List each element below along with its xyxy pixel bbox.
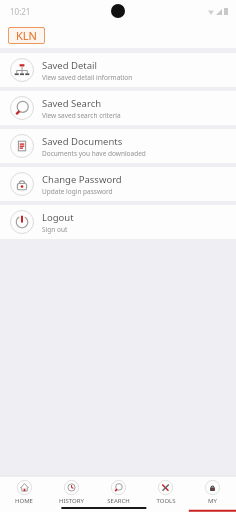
- staticText: Logout: [42, 211, 74, 224]
- staticText: Saved Search: [42, 97, 102, 110]
- staticText: HISTORY: [59, 497, 84, 505]
- button[interactable]: Saved Documents: [0, 129, 236, 163]
- staticText: 10:21: [10, 6, 31, 17]
- staticText: KLN: [16, 28, 37, 43]
- button[interactable]: SEARCH: [95, 477, 142, 507]
- staticText: TOOLS: [156, 497, 176, 505]
- button[interactable]: Saved Detail: [0, 53, 236, 87]
- staticText: View saved detail information: [42, 73, 133, 82]
- button[interactable]: HISTORY: [48, 477, 95, 507]
- staticText: MY: [208, 497, 217, 505]
- staticText: Saved Detail: [42, 59, 97, 72]
- button[interactable]: Logout: [0, 205, 236, 239]
- button[interactable]: Change Password: [0, 167, 236, 201]
- staticText: Saved Documents: [42, 135, 123, 148]
- button[interactable]: KLN logo: [8, 27, 45, 44]
- staticText: SEARCH: [107, 497, 130, 505]
- staticText: Sign out: [42, 225, 68, 234]
- button[interactable]: TOOLS: [142, 477, 189, 507]
- staticText: HOME: [15, 497, 33, 505]
- staticText: Documents you have downloaded: [42, 149, 146, 158]
- button[interactable]: MY: [189, 477, 236, 507]
- staticText: View saved search criteria: [42, 111, 121, 120]
- staticText: Update login password: [42, 187, 113, 196]
- button[interactable]: HOME: [0, 477, 48, 507]
- staticText: Change Password: [42, 173, 122, 186]
- button[interactable]: Saved Search: [0, 91, 236, 125]
